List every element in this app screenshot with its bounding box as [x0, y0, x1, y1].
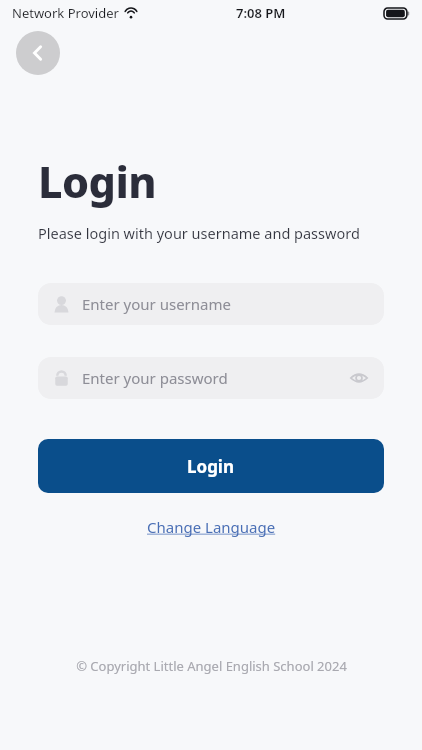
staticText: 7:08 PM	[236, 4, 286, 22]
staticText: Enter your password	[82, 368, 228, 388]
staticText: Change Language	[147, 517, 276, 537]
staticText: Network Provider	[12, 4, 119, 22]
staticText: © Copyright Little Angel English School …	[76, 657, 347, 675]
button[interactable]: Change Language	[141, 513, 282, 541]
staticText: Please login with your username and pass…	[38, 223, 360, 243]
button[interactable]: Enter your password	[38, 357, 384, 399]
staticText: Login	[187, 455, 235, 478]
button[interactable]: Back	[16, 31, 60, 75]
staticText: Enter your username	[82, 294, 231, 314]
staticText: Login	[38, 152, 157, 211]
button[interactable]: Login	[38, 439, 384, 493]
button[interactable]: Show password	[348, 367, 370, 389]
button[interactable]: Enter your username	[38, 283, 384, 325]
